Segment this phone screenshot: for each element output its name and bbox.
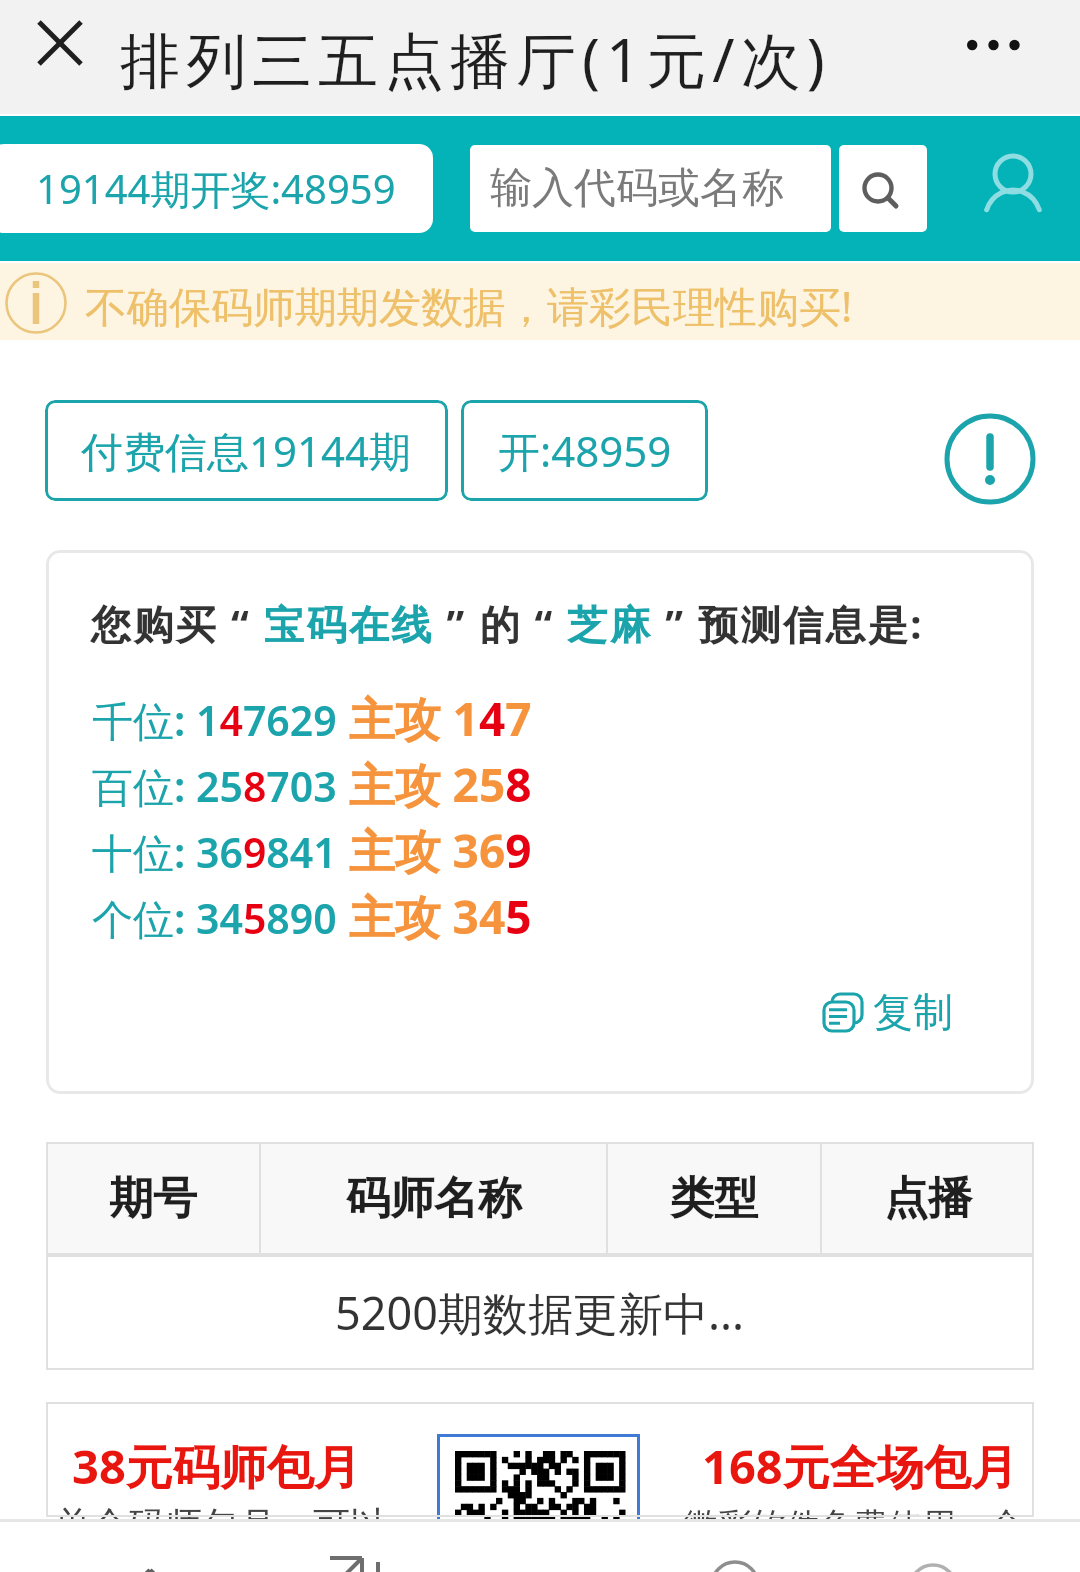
button[interactable]: Recent apps xyxy=(888,1522,978,1572)
staticText: 排列三五点播厅(1元/次) xyxy=(120,18,831,100)
button[interactable]: 复制 xyxy=(819,987,953,1037)
staticText: 期号 xyxy=(109,1171,197,1226)
button[interactable]: Home xyxy=(690,1522,780,1572)
staticText: 5200期数据更新中... xyxy=(335,1282,745,1343)
staticText: 复制 xyxy=(873,987,953,1037)
button[interactable]: Open in browser xyxy=(300,1522,400,1572)
staticText: 微彩软件免费使用，全 xyxy=(684,1504,1024,1547)
button[interactable]: 付费信息19144期 xyxy=(45,400,448,501)
staticText: 19144期开奖:48959 xyxy=(36,161,396,216)
staticText: 付费信息19144期 xyxy=(81,422,412,479)
button[interactable]: Search xyxy=(839,145,927,232)
staticText: 38元码师包月 xyxy=(72,1434,361,1498)
staticText: 输入代码或名称 xyxy=(490,162,784,215)
button[interactable]: More options xyxy=(951,2,1047,88)
button[interactable]: Back xyxy=(108,1522,192,1572)
staticText: 个位: 345890 主攻 345 xyxy=(92,885,532,948)
staticText: 单个码师包月，可以 xyxy=(54,1502,387,1549)
staticText: 您购买 “ 宝码在线 ” 的 “ 芝麻 ” 预测信息是: xyxy=(91,596,924,651)
staticText: 百位: 258703 主攻 258 xyxy=(92,753,532,816)
staticText: 不确保码师期期发数据，请彩民理性购买! xyxy=(85,277,853,334)
button[interactable]: 输入代码或名称 xyxy=(470,145,831,232)
staticText: 开:48959 xyxy=(498,422,672,479)
button[interactable]: 19144期开奖:48959 xyxy=(0,144,433,233)
staticText: 十位: 369841 主攻 369 xyxy=(92,819,532,882)
staticText: 168元全场包月 xyxy=(702,1434,1018,1498)
button[interactable]: Close xyxy=(25,8,95,78)
button[interactable]: Warning information xyxy=(944,413,1036,505)
staticText: 类型 xyxy=(670,1171,758,1226)
staticText: 点播 xyxy=(884,1171,972,1226)
button[interactable]: Account xyxy=(974,145,1052,233)
staticText: 码师名称 xyxy=(346,1171,522,1226)
button[interactable]: 开:48959 xyxy=(461,400,708,501)
staticText: 千位: 147629 主攻 147 xyxy=(92,687,532,750)
